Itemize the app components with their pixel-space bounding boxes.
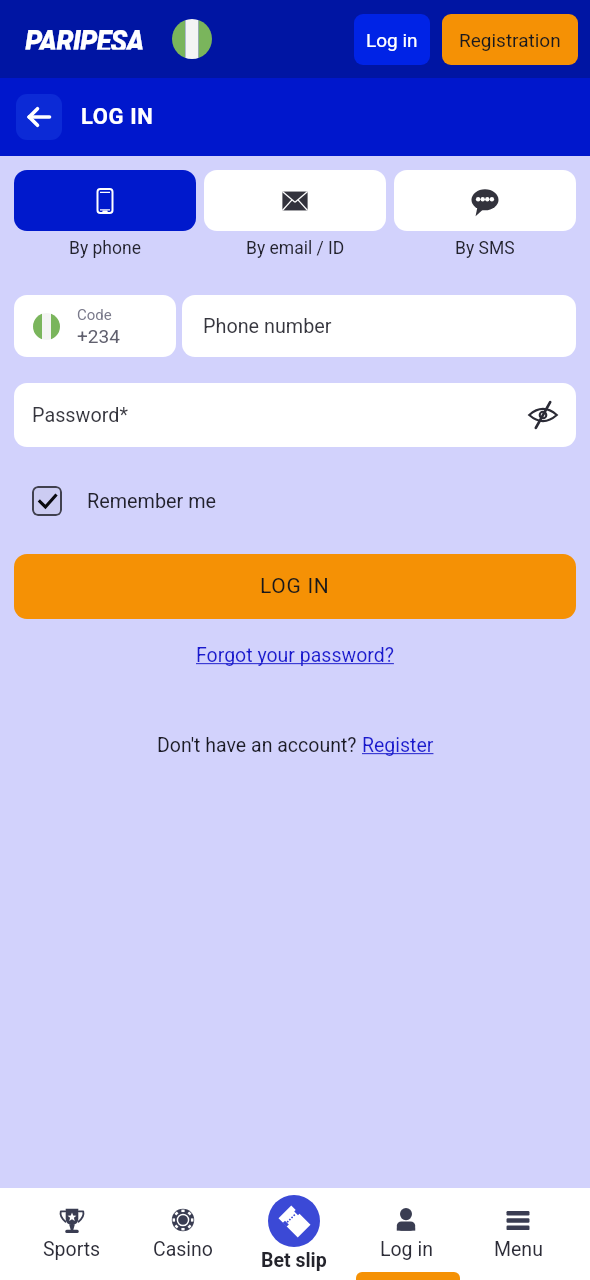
staticText: Log in [366,29,418,51]
staticText: Bet slip [261,1249,327,1272]
button[interactable]: Casino [127,1188,238,1261]
button[interactable]: Code [14,295,176,357]
button[interactable]: By phone [14,170,196,259]
staticText: By SMS [455,238,515,259]
button[interactable]: By email / ID [204,170,386,259]
staticText: By email / ID [246,238,345,259]
staticText: Don't have an account? [157,734,362,757]
staticText: Casino [153,1238,213,1261]
staticText: Sports [43,1238,101,1261]
button[interactable]: By SMS [394,170,576,259]
staticText: Registration [459,29,561,51]
staticText: PARIPESA [25,22,144,50]
button[interactable]: LOG IN [14,554,576,619]
button[interactable]: Phone number [182,295,576,357]
staticText: Remember me [87,490,217,513]
staticText: Log in [380,1238,433,1261]
button[interactable]: Show password [526,398,560,432]
staticText: +234 [77,325,120,347]
button[interactable]: Forgot your password? [196,644,394,667]
button[interactable]: Log in [354,14,430,65]
button[interactable]: Registration [442,14,578,65]
staticText: LOG IN [81,104,154,130]
button[interactable]: Password* [14,383,576,447]
staticText: LOG IN [260,574,330,599]
button[interactable]: Bet slip [238,1188,350,1272]
staticText: Password* [32,404,128,427]
staticText: Code [77,306,112,324]
staticText: Phone number [203,315,332,338]
button[interactable]: Back [16,94,62,140]
button[interactable]: Log in [350,1188,462,1261]
button[interactable]: Sports [16,1188,127,1261]
staticText: Menu [494,1238,543,1261]
button[interactable]: Remember me [32,486,217,516]
button[interactable]: Register [362,734,434,757]
button[interactable]: Menu [462,1188,574,1261]
staticText: By phone [69,238,141,259]
